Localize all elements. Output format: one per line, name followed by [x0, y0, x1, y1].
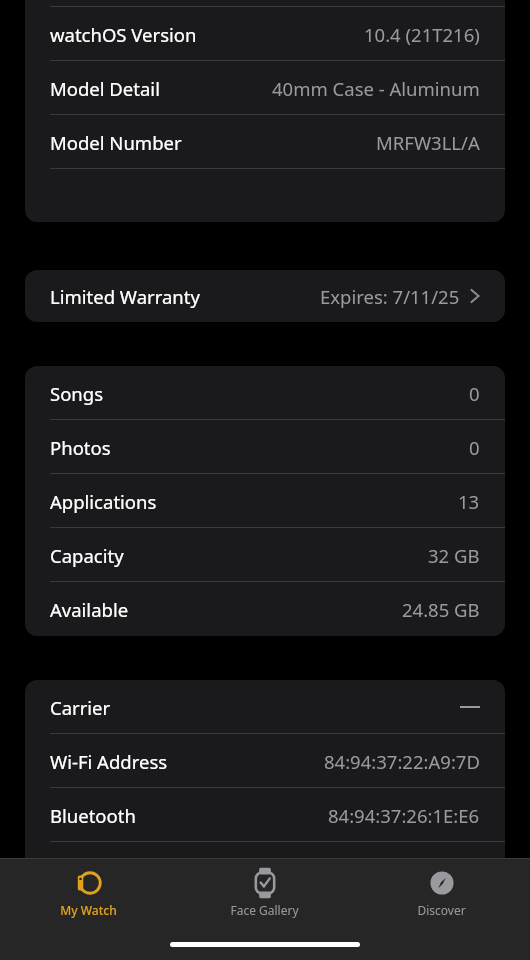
button[interactable]: Name: [25, 0, 505, 7]
staticText: 32 GB: [428, 543, 480, 568]
staticText: Available: [50, 597, 129, 622]
button[interactable]: Discover: [353, 859, 530, 926]
button[interactable]: Model Number: [25, 115, 505, 169]
staticText: 24.85 GB: [402, 597, 480, 622]
staticText: Discover: [417, 902, 466, 918]
staticText: Carrier: [50, 695, 111, 720]
button[interactable]: My Watch: [0, 859, 176, 926]
button[interactable]: Wi-Fi Address: [25, 734, 505, 788]
staticText: Applications: [50, 489, 157, 514]
staticText: Face Gallery: [230, 902, 299, 918]
staticText: Model Detail: [50, 76, 160, 101]
staticText: 40mm Case - Aluminum: [272, 76, 480, 101]
button[interactable]: Model Detail: [25, 61, 505, 115]
staticText: 0: [469, 381, 480, 406]
staticText: MRFW3LL/A: [376, 130, 480, 155]
staticText: 10.4 (21T216): [364, 22, 480, 47]
staticText: 84:94:37:26:1E:E6: [328, 803, 480, 828]
button[interactable]: Applications: [25, 474, 505, 528]
staticText: Expires: 7/11/25: [320, 284, 460, 309]
button[interactable]: Capacity: [25, 528, 505, 582]
button[interactable]: Photos: [25, 420, 505, 474]
staticText: 0: [469, 435, 480, 460]
button[interactable]: Carrier: [25, 680, 505, 734]
staticText: Model Number: [50, 130, 182, 155]
staticText: Songs: [50, 381, 104, 406]
staticText: watchOS Version: [50, 22, 197, 47]
staticText: 13: [458, 489, 480, 514]
staticText: 84:94:37:22:A9:7D: [324, 749, 480, 774]
button[interactable]: Limited Warranty: [25, 270, 505, 322]
staticText: SEID: [50, 857, 91, 882]
button[interactable]: Bluetooth: [25, 788, 505, 842]
staticText: Capacity: [50, 543, 124, 568]
button[interactable]: SEID: [25, 842, 505, 896]
staticText: My Watch: [60, 902, 117, 918]
staticText: Limited Warranty: [50, 284, 200, 309]
staticText: Photos: [50, 435, 111, 460]
button[interactable]: Songs: [25, 366, 505, 420]
staticText: Wi-Fi Address: [50, 749, 168, 774]
button[interactable]: Face Gallery: [176, 859, 353, 926]
button[interactable]: Available: [25, 582, 505, 636]
staticText: Bluetooth: [50, 803, 136, 828]
button[interactable]: watchOS Version: [25, 7, 505, 61]
